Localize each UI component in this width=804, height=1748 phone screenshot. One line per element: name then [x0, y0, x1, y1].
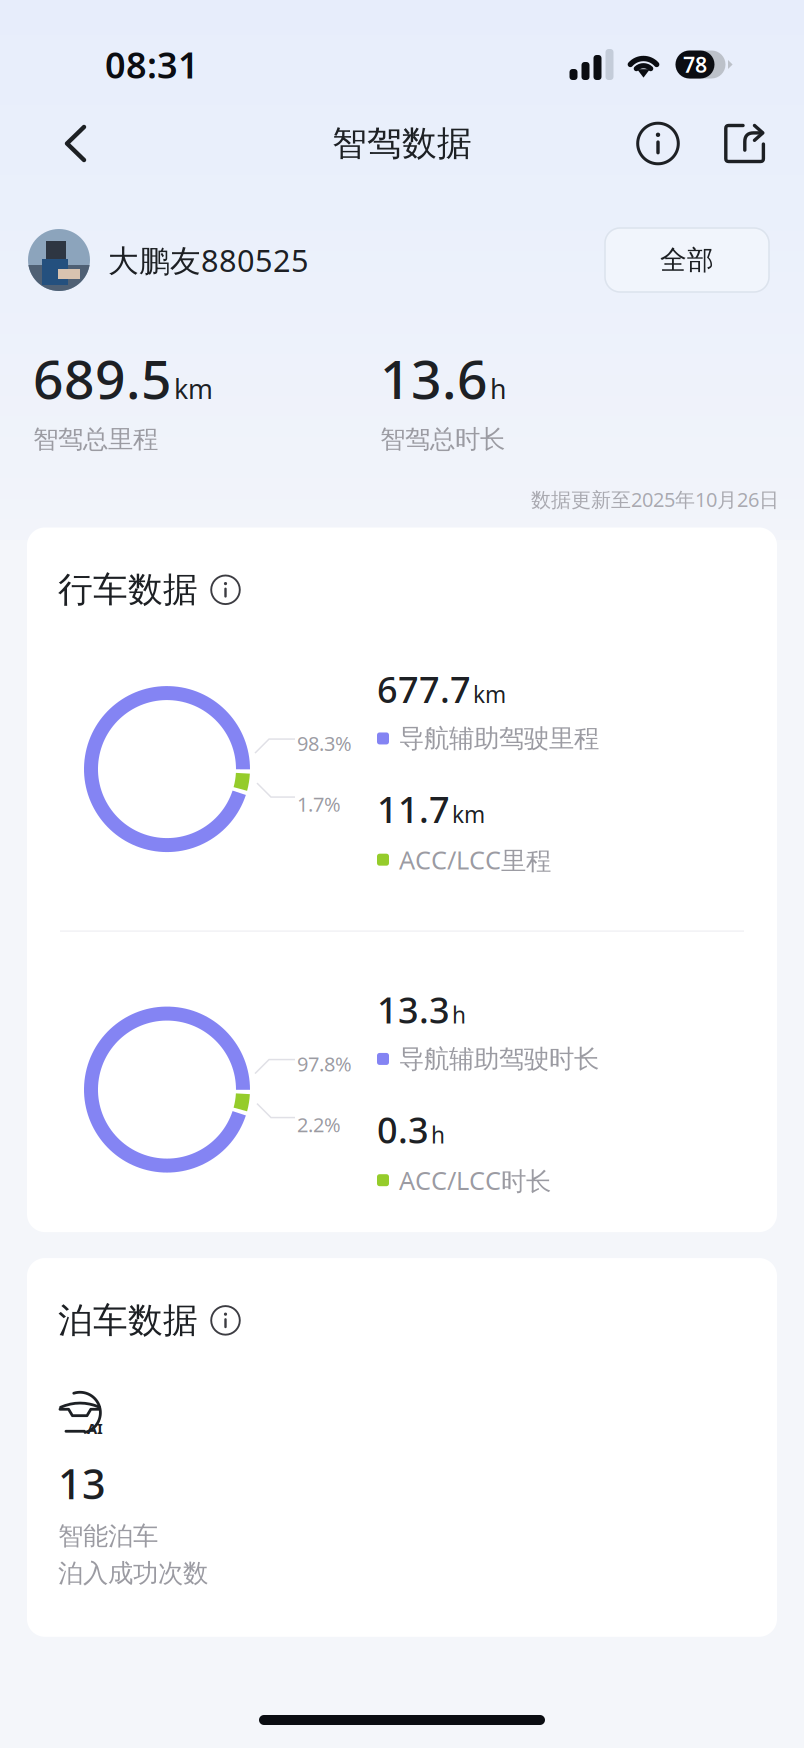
staticText: 全部	[660, 244, 714, 276]
staticText: 智驾总里程	[33, 424, 158, 455]
staticText: h	[431, 1119, 445, 1150]
staticText: 导航辅助驾驶里程	[399, 723, 599, 754]
staticText: 泊车数据	[58, 1299, 198, 1342]
staticText: 行车数据	[58, 568, 198, 611]
staticText: 11.7	[377, 785, 450, 833]
staticText: AI	[87, 1419, 103, 1438]
staticText: 08:31	[105, 41, 199, 88]
button[interactable]: About 泊车数据	[210, 1305, 241, 1336]
staticText: km	[473, 679, 506, 709]
staticText: 泊入成功次数	[58, 1558, 208, 1589]
staticText: km	[452, 799, 485, 829]
staticText: 98.3%	[297, 730, 352, 757]
staticText: 数据更新至2025年10月26日	[531, 486, 779, 512]
staticText: ACC/LCC里程	[399, 843, 551, 877]
staticText: 78	[683, 50, 707, 79]
staticText: km	[174, 371, 213, 406]
staticText: 97.8%	[297, 1051, 352, 1077]
staticText: 0.3	[377, 1105, 429, 1153]
staticText: 大鹏友880525	[108, 240, 309, 280]
staticText: 1.7%	[297, 791, 341, 817]
staticText: 智驾数据	[332, 122, 472, 165]
staticText: 智驾总时长	[380, 424, 505, 455]
button[interactable]: 全部	[605, 228, 769, 292]
button[interactable]: Share	[716, 114, 774, 172]
staticText: 13.6	[380, 343, 488, 414]
staticText: ACC/LCC时长	[399, 1163, 551, 1197]
staticText: 13	[58, 1456, 106, 1511]
staticText: 13.3	[377, 986, 450, 1033]
staticText: 677.7	[377, 665, 471, 713]
staticText: 2.2%	[297, 1111, 341, 1138]
button[interactable]: Back	[46, 113, 106, 173]
staticText: 导航辅助驾驶时长	[399, 1043, 599, 1074]
button[interactable]: Information	[629, 114, 687, 172]
staticText: 智能泊车	[58, 1521, 158, 1552]
button[interactable]: About 行车数据	[210, 574, 241, 605]
staticText: 689.5	[33, 343, 172, 414]
staticText: h	[452, 1000, 466, 1030]
staticText: h	[490, 371, 506, 406]
